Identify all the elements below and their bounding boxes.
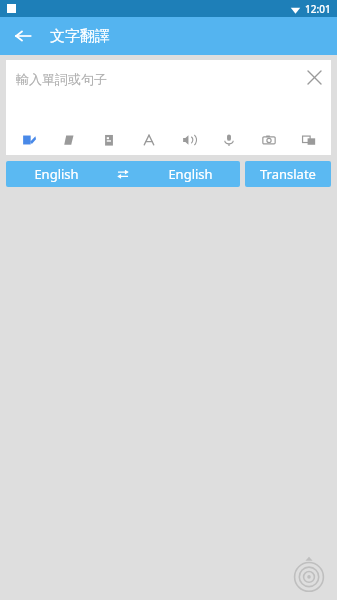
button[interactable]: Eraser — [49, 129, 89, 151]
button[interactable]: Navigation assist — [289, 554, 329, 594]
staticText: Translate — [260, 165, 316, 183]
button[interactable]: Translate — [245, 161, 331, 187]
staticText: 12:01 — [305, 2, 331, 16]
staticText: 文字翻譯 — [50, 27, 110, 46]
button[interactable]: Swap languages — [106, 161, 140, 187]
button[interactable]: Clear — [300, 63, 328, 91]
button[interactable]: Speak — [169, 129, 209, 151]
button[interactable]: Clipboard — [89, 129, 129, 151]
staticText: English — [168, 165, 213, 183]
button[interactable]: English — [140, 161, 240, 187]
button[interactable]: English — [6, 161, 106, 187]
button[interactable]: Image translate — [289, 129, 329, 151]
button[interactable]: Handwriting — [8, 129, 49, 151]
button[interactable]: Microphone — [209, 129, 249, 151]
staticText: English — [34, 165, 79, 183]
button[interactable]: Keyboard — [129, 129, 169, 151]
button[interactable]: Back — [6, 19, 40, 53]
staticText: 輸入單詞或句子 — [16, 71, 107, 87]
button[interactable]: Camera — [249, 129, 289, 151]
